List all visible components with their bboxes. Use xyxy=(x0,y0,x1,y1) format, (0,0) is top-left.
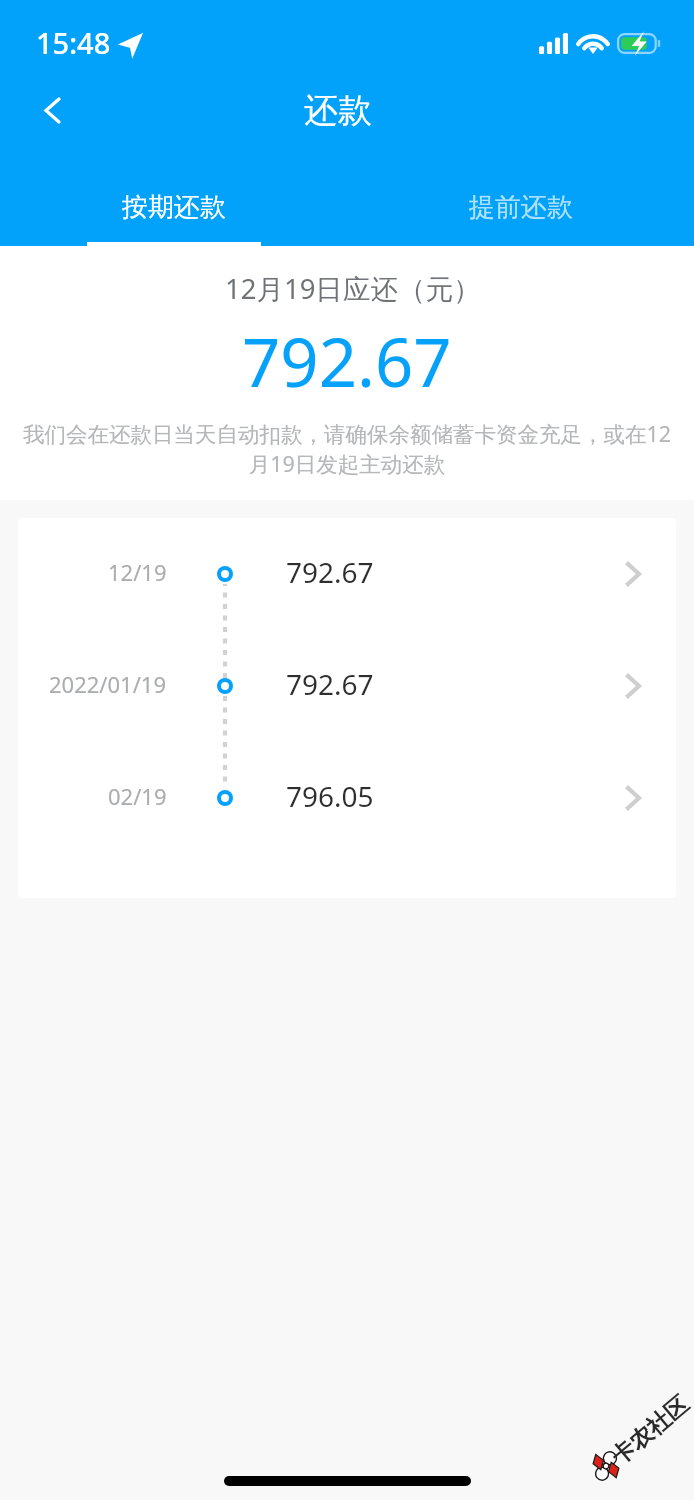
button[interactable]: 02/19 xyxy=(18,742,676,854)
staticText: 12/19 xyxy=(108,557,167,587)
button[interactable]: Back xyxy=(16,74,88,146)
staticText: 02/19 xyxy=(108,781,167,811)
staticText: 792.67 xyxy=(286,553,374,591)
button[interactable]: 2022/01/19 xyxy=(18,630,676,742)
staticText: 我们会在还款日当天自动扣款，请确保余额储蓄卡资金充足，或在12月19日发起主动还… xyxy=(14,419,680,478)
staticText: 792.67 xyxy=(286,665,374,703)
staticText: 15:48 xyxy=(36,23,111,62)
button[interactable]: 12/19 xyxy=(18,518,676,630)
staticText: 12月19日应还（元） xyxy=(225,270,481,308)
button[interactable]: 提前还款 xyxy=(347,156,694,246)
staticText: 2022/01/19 xyxy=(49,669,167,699)
staticText: 796.05 xyxy=(286,777,374,815)
button[interactable]: 按期还款 xyxy=(0,156,347,246)
staticText: 还款 xyxy=(304,89,372,132)
staticText: 卡农社区 xyxy=(605,1390,694,1471)
staticText: 792.67 xyxy=(242,315,452,406)
staticText: 按期还款 xyxy=(122,191,226,224)
staticText: 提前还款 xyxy=(469,191,573,224)
